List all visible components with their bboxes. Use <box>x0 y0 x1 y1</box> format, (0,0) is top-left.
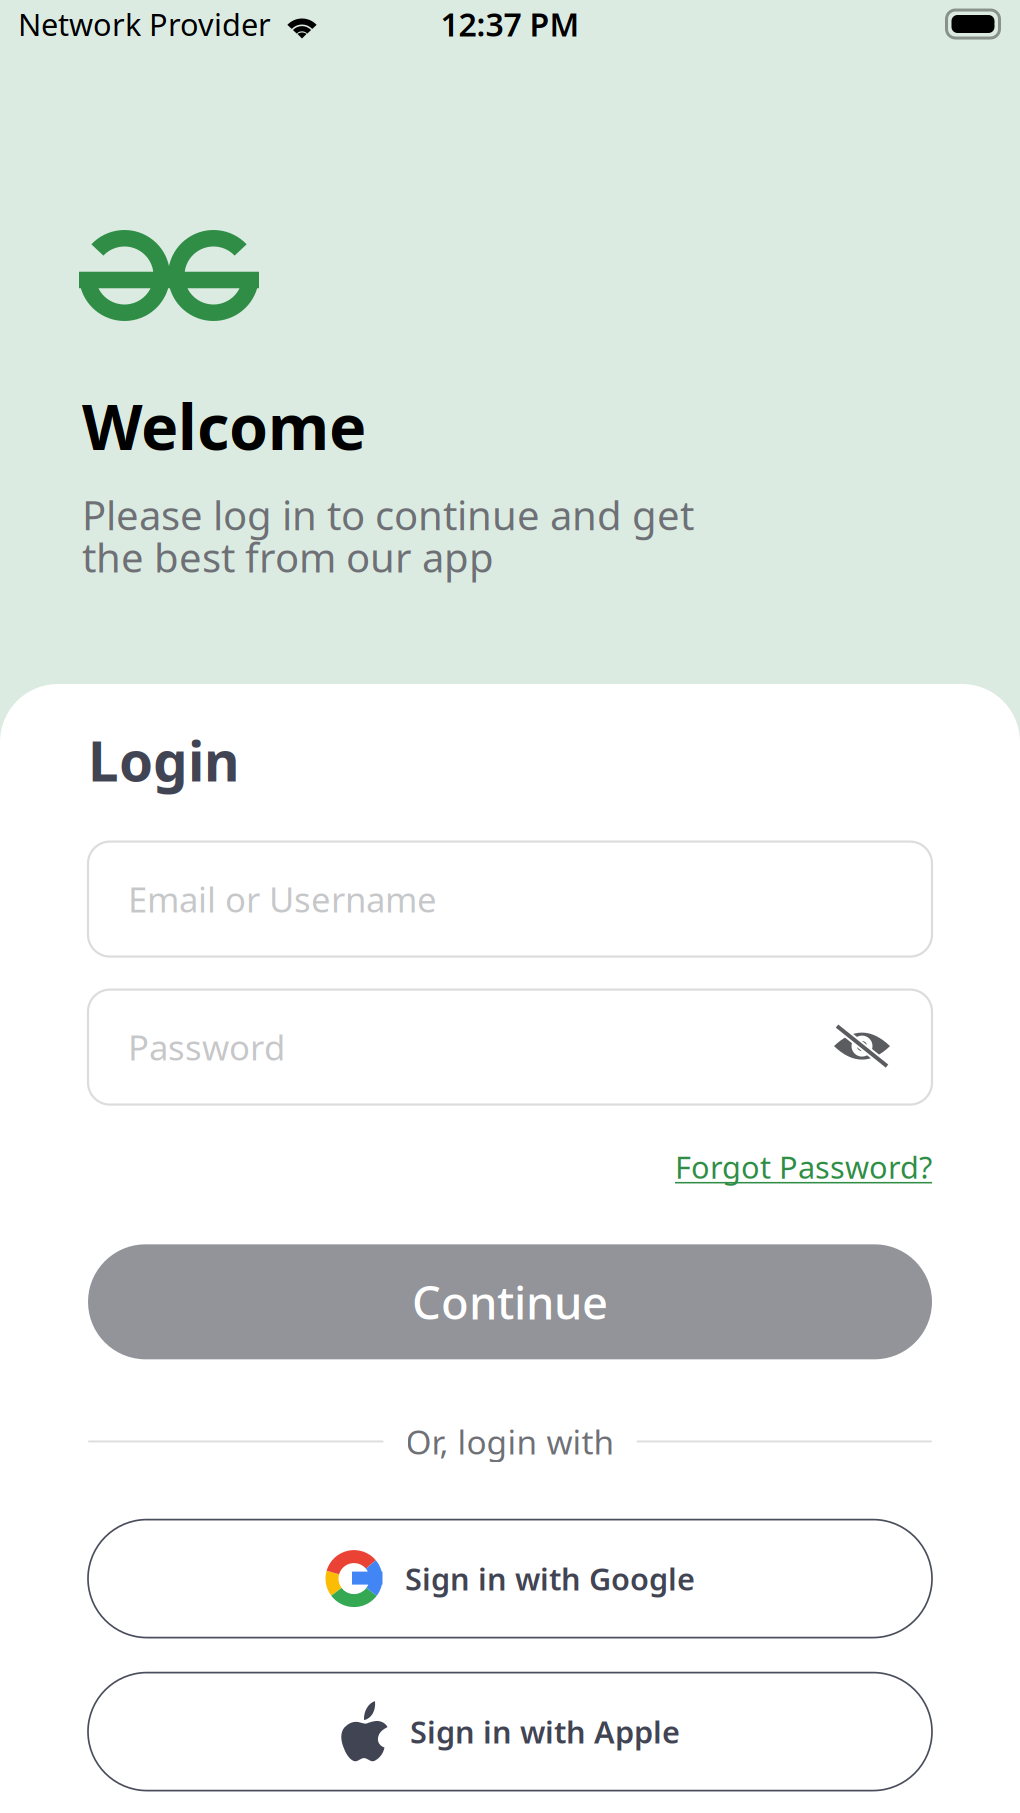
staticText: Login <box>88 724 240 797</box>
staticText: Forgot Password? <box>675 1147 932 1187</box>
staticText: Password <box>128 1024 285 1070</box>
staticText: 12:37 PM <box>440 3 579 45</box>
staticText: Or, login with <box>405 1419 614 1464</box>
staticText: Email or Username <box>128 876 437 922</box>
staticText: Network Provider <box>18 4 271 44</box>
staticText: Continue <box>412 1272 608 1332</box>
button[interactable]: Forgot Password? <box>675 1147 932 1187</box>
button[interactable]: Sign in with Apple <box>88 1673 932 1791</box>
staticText: Sign in with Apple <box>410 1711 680 1752</box>
staticText: Sign in with Google <box>405 1558 695 1599</box>
button[interactable]: Continue <box>88 1244 932 1359</box>
staticText: Please log in to continue and get the be… <box>82 488 694 583</box>
button[interactable]: Sign in with Google <box>88 1520 932 1638</box>
staticText: Welcome <box>82 384 366 467</box>
